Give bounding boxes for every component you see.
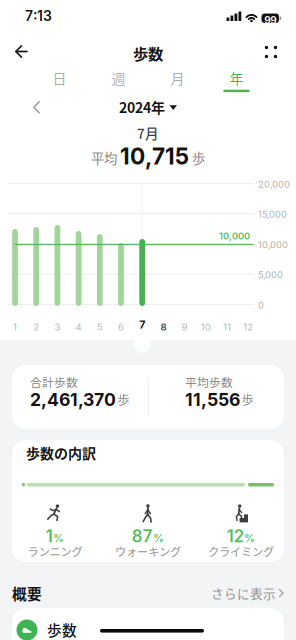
staticText: 8 (160, 321, 166, 333)
staticText: 1 (46, 526, 53, 546)
staticText: 0 (258, 300, 264, 311)
staticText: 11,556 (185, 389, 240, 410)
staticText: 月 (170, 68, 184, 88)
staticText: 歩 (117, 391, 129, 408)
button[interactable]: さらに表示 (184, 584, 284, 602)
staticText: さらに表示 (211, 584, 276, 602)
staticText: 合計歩数 (30, 373, 78, 390)
staticText: 日 (52, 68, 66, 88)
button[interactable]: 日 (30, 68, 89, 92)
staticText: 4 (76, 321, 82, 333)
button[interactable] (4, 38, 44, 66)
staticText: 10,715 (120, 142, 189, 170)
staticText: クライミング (208, 543, 274, 559)
staticText: 概要 (12, 582, 42, 604)
button[interactable]: 週 (89, 68, 148, 92)
staticText: 15,000 (258, 209, 287, 220)
staticText: ランニング (27, 543, 82, 559)
staticText: 10 (201, 321, 211, 333)
staticText: 2024年 (119, 97, 165, 117)
staticText: 7 (139, 318, 145, 331)
staticText: 2 (33, 321, 39, 333)
staticText: 10,000 (258, 239, 288, 250)
staticText: 週 (111, 68, 125, 88)
staticText: 歩数 (133, 42, 163, 64)
staticText: % (244, 532, 255, 545)
staticText: 1 (13, 321, 17, 333)
button[interactable]: 年 (207, 68, 266, 92)
staticText: 5 (97, 321, 103, 333)
staticText: 5,000 (258, 269, 283, 280)
button[interactable] (22, 94, 52, 121)
staticText: 3 (54, 321, 60, 333)
staticText: ウォーキング (115, 543, 181, 559)
staticText: 11 (223, 321, 231, 333)
button[interactable]: 歩数 (12, 608, 284, 640)
staticText: 87 (132, 526, 153, 546)
staticText: 平均歩数 (185, 373, 233, 390)
button[interactable]: 2024年 (88, 96, 208, 118)
button[interactable] (254, 38, 286, 70)
staticText: 9 (182, 321, 188, 333)
staticText: 歩 (241, 391, 253, 408)
staticText: 歩 (192, 148, 205, 167)
staticText: 歩数の内訳 (26, 442, 96, 463)
staticText: 10,000 (219, 230, 250, 242)
staticText: 年 (229, 68, 243, 88)
staticText: 平均 (91, 148, 117, 167)
staticText: 歩数 (47, 619, 77, 640)
staticText: % (153, 532, 164, 545)
staticText: 99 (264, 14, 276, 26)
staticText: 20,000 (258, 179, 290, 190)
staticText: 2,461,370 (30, 389, 116, 410)
staticText: 12 (227, 526, 244, 546)
staticText: % (53, 532, 64, 545)
staticText: 6 (118, 321, 124, 333)
staticText: 12 (243, 321, 253, 333)
staticText: 7月 (137, 123, 159, 143)
button[interactable]: 月 (148, 68, 207, 92)
staticText: 7:13 (25, 7, 52, 24)
